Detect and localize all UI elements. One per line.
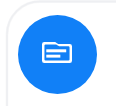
button[interactable]: Open files xyxy=(18,15,97,94)
